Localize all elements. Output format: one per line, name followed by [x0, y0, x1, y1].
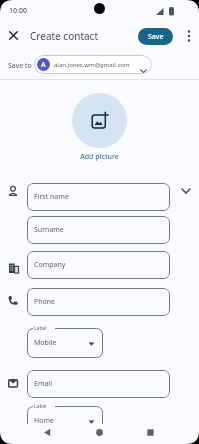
staticText: alan.jones.wm@gmail.com	[54, 61, 130, 69]
button[interactable]: A	[34, 55, 152, 74]
staticText: Email	[34, 379, 52, 389]
staticText: Label	[34, 403, 47, 410]
button[interactable]	[72, 93, 127, 148]
button[interactable]	[181, 188, 191, 194]
button[interactable]: Label	[27, 328, 103, 358]
button[interactable]	[43, 428, 52, 437]
staticText: 10:00	[9, 6, 27, 16]
staticText: Home	[34, 416, 54, 426]
button[interactable]: Add picture	[0, 152, 199, 162]
staticText: Save	[148, 32, 164, 42]
staticText: Mobile	[34, 338, 57, 348]
button[interactable]: Surname	[27, 216, 170, 244]
button[interactable]: Save	[138, 28, 173, 45]
button[interactable]: Label	[27, 406, 103, 436]
staticText: Company	[34, 260, 66, 270]
button[interactable]	[146, 428, 155, 437]
button[interactable]: Phone	[27, 288, 170, 316]
staticText: Create contact	[30, 29, 99, 43]
staticText: First name	[34, 192, 69, 202]
staticText: Label	[34, 325, 47, 332]
button[interactable]: Email	[27, 370, 170, 398]
button[interactable]: Company	[27, 251, 170, 279]
staticText: Surname	[34, 225, 64, 235]
button[interactable]	[9, 31, 18, 40]
staticText: Save to	[8, 61, 32, 71]
button[interactable]	[185, 29, 193, 43]
button[interactable]: First name	[27, 183, 170, 211]
staticText: A	[41, 60, 46, 70]
button[interactable]	[95, 428, 104, 437]
staticText: Phone	[34, 297, 56, 307]
